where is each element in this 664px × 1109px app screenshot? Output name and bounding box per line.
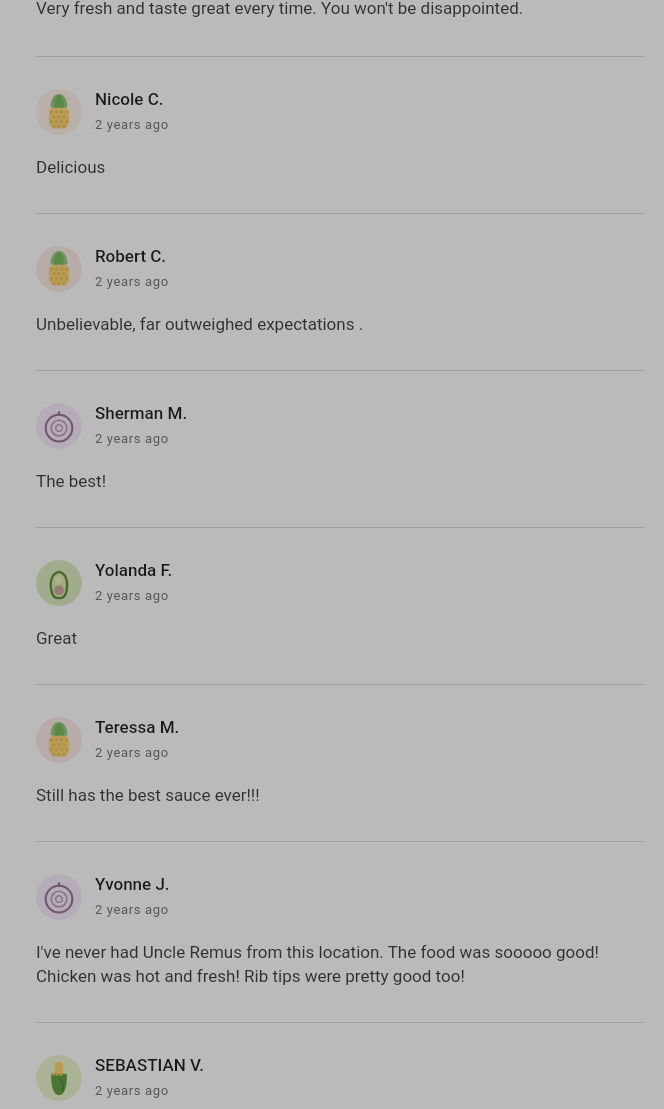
staticText: I've never had Uncle Remus from this loc… xyxy=(36,942,644,986)
staticText: Very fresh and taste great every time. Y… xyxy=(36,0,524,18)
staticText: Sherman M. xyxy=(95,403,188,423)
staticText: 2 years ago xyxy=(95,1083,169,1098)
button[interactable]: Robert C. xyxy=(0,214,664,370)
staticText: Great xyxy=(36,628,78,648)
button[interactable]: Yvonne J. xyxy=(0,842,664,1022)
staticText: Unbelievable, far outweighed expectation… xyxy=(36,314,364,334)
staticText: Still has the best sauce ever!!! xyxy=(36,785,260,805)
staticText: Yvonne J. xyxy=(95,874,170,894)
staticText: Delicious xyxy=(36,157,106,177)
staticText: 2 years ago xyxy=(95,117,169,132)
button[interactable]: Teressa M. xyxy=(0,685,664,841)
staticText: 2 years ago xyxy=(95,274,169,289)
staticText: 2 years ago xyxy=(95,431,169,446)
staticText: The best! xyxy=(36,471,107,491)
staticText: Teressa M. xyxy=(95,717,180,737)
staticText: SEBASTIAN V. xyxy=(95,1055,205,1075)
staticText: Robert C. xyxy=(95,246,167,266)
button[interactable]: Nicole C. xyxy=(0,57,664,213)
button[interactable]: Yolanda F. xyxy=(0,528,664,684)
staticText: 2 years ago xyxy=(95,902,169,917)
button[interactable]: SEBASTIAN V. xyxy=(0,1023,664,1109)
staticText: Nicole C. xyxy=(95,89,164,109)
staticText: 2 years ago xyxy=(95,588,169,603)
staticText: 2 years ago xyxy=(95,745,169,760)
button[interactable]: Sherman M. xyxy=(0,371,664,527)
staticText: Yolanda F. xyxy=(95,560,173,580)
